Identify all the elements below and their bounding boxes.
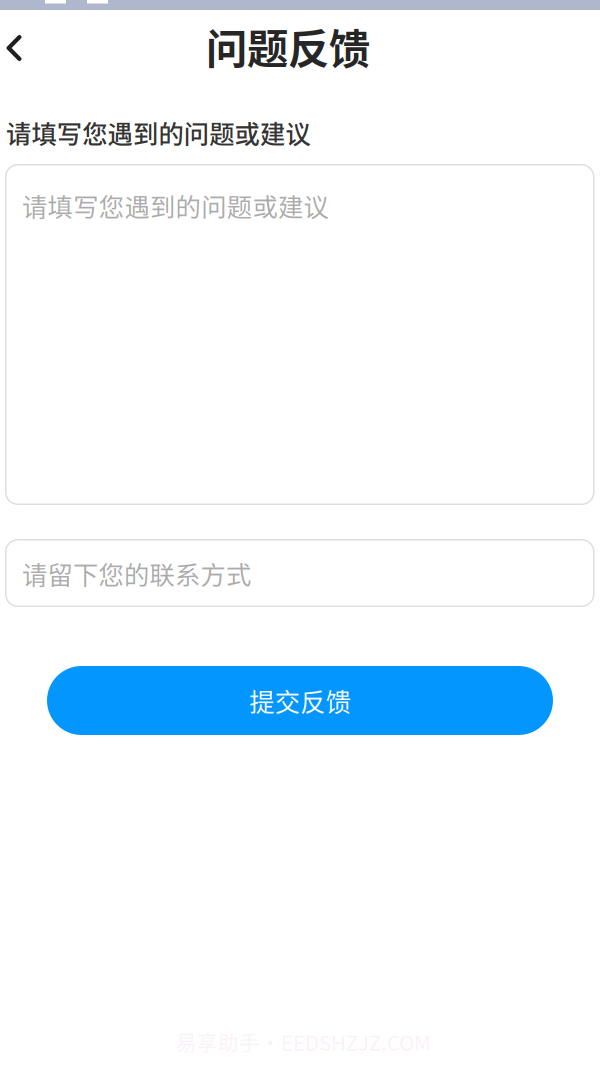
button[interactable]: Back xyxy=(0,11,42,85)
staticText: 问题反馈 xyxy=(206,16,370,76)
button[interactable]: 提交反馈 xyxy=(47,666,553,735)
button[interactable]: 请留下您的联系方式 xyxy=(5,539,594,607)
staticText: 易享助手·EEDSHZJZ.COM xyxy=(176,1027,431,1057)
staticText: 请填写您遇到的问题或建议 xyxy=(6,114,310,151)
staticText: 提交反馈 xyxy=(249,682,351,719)
staticText: 请留下您的联系方式 xyxy=(22,555,251,592)
staticText: 请填写您遇到的问题或建议 xyxy=(22,187,329,224)
button[interactable]: 请填写您遇到的问题或建议 xyxy=(5,164,594,505)
